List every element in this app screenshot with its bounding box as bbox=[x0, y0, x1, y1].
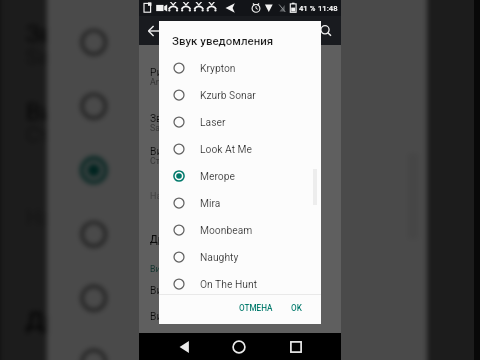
button[interactable]: Home bbox=[227, 335, 251, 359]
button[interactable]: Mira bbox=[159, 189, 321, 216]
staticText: Звук уведомления bbox=[172, 34, 274, 47]
staticText: Naughty bbox=[200, 251, 239, 263]
staticText: Настройки по умолчанию bbox=[26, 206, 284, 232]
button[interactable]: Mira bbox=[47, 201, 427, 265]
button[interactable]: Search bbox=[314, 19, 338, 43]
button[interactable]: Moonbeam bbox=[159, 216, 321, 243]
staticText: Другое bbox=[26, 305, 108, 334]
staticText: Настройки по умолчанию bbox=[150, 191, 260, 202]
staticText: Andromeda bbox=[150, 77, 196, 87]
button[interactable]: Kzurb Sonar bbox=[159, 81, 321, 108]
staticText: Mira bbox=[143, 220, 192, 248]
button[interactable]: Look At Me bbox=[47, 73, 427, 137]
staticText: Виброотклик bbox=[150, 310, 214, 322]
button[interactable]: OK bbox=[284, 297, 308, 318]
staticText: Kzurb Sonar bbox=[200, 89, 256, 101]
staticText: Стандартная bbox=[26, 123, 152, 146]
button[interactable]: Merope bbox=[47, 137, 427, 201]
staticText: Laser bbox=[143, 28, 204, 56]
button[interactable]: Naughty bbox=[47, 329, 427, 360]
button[interactable]: Kzurb Sonar bbox=[47, 0, 427, 9]
staticText: Вибрация bbox=[150, 145, 198, 157]
button[interactable]: Back bbox=[173, 335, 197, 359]
staticText: Звук уведомления bbox=[26, 18, 237, 47]
staticText: 41 % bbox=[299, 4, 316, 13]
button[interactable]: Merope bbox=[159, 162, 321, 189]
button[interactable]: Laser bbox=[47, 9, 427, 73]
staticText: ОТМЕНА bbox=[239, 303, 273, 313]
staticText: Звук уведомления bbox=[150, 112, 240, 124]
staticText: Рингтон bbox=[150, 66, 190, 78]
staticText: OK bbox=[291, 303, 302, 313]
staticText: Mira bbox=[200, 197, 221, 209]
staticText: Другое bbox=[150, 233, 185, 245]
staticText: Merope bbox=[143, 156, 225, 184]
staticText: Krypton bbox=[200, 62, 236, 74]
staticText: Вибрация bbox=[26, 97, 138, 125]
staticText: Saturn bbox=[26, 45, 87, 68]
staticText: Вибрация при вызове bbox=[150, 284, 257, 296]
button[interactable]: ОТМЕНА bbox=[236, 297, 276, 318]
staticText: Look At Me bbox=[200, 143, 253, 155]
staticText: 11:48 bbox=[318, 4, 338, 13]
staticText: Стандартная bbox=[150, 156, 204, 166]
staticText: Naughty bbox=[143, 348, 235, 360]
staticText: Вибросигнал bbox=[150, 264, 204, 274]
button[interactable]: On The Hunt bbox=[159, 270, 321, 297]
staticText: Look At Me bbox=[143, 92, 267, 120]
staticText: Merope bbox=[200, 170, 235, 182]
button[interactable]: Moonbeam bbox=[47, 265, 427, 329]
staticText: On The Hunt bbox=[200, 278, 258, 290]
button[interactable]: Laser bbox=[159, 108, 321, 135]
button[interactable]: Krypton bbox=[159, 54, 321, 81]
staticText: Laser bbox=[200, 116, 226, 128]
staticText: Moonbeam bbox=[143, 284, 267, 312]
button[interactable]: Look At Me bbox=[159, 135, 321, 162]
staticText: Moonbeam bbox=[200, 224, 253, 236]
staticText: Saturn bbox=[150, 123, 176, 133]
button[interactable]: Navigate up bbox=[142, 19, 166, 43]
button[interactable]: Recent apps bbox=[284, 335, 308, 359]
button[interactable]: Naughty bbox=[159, 243, 321, 270]
